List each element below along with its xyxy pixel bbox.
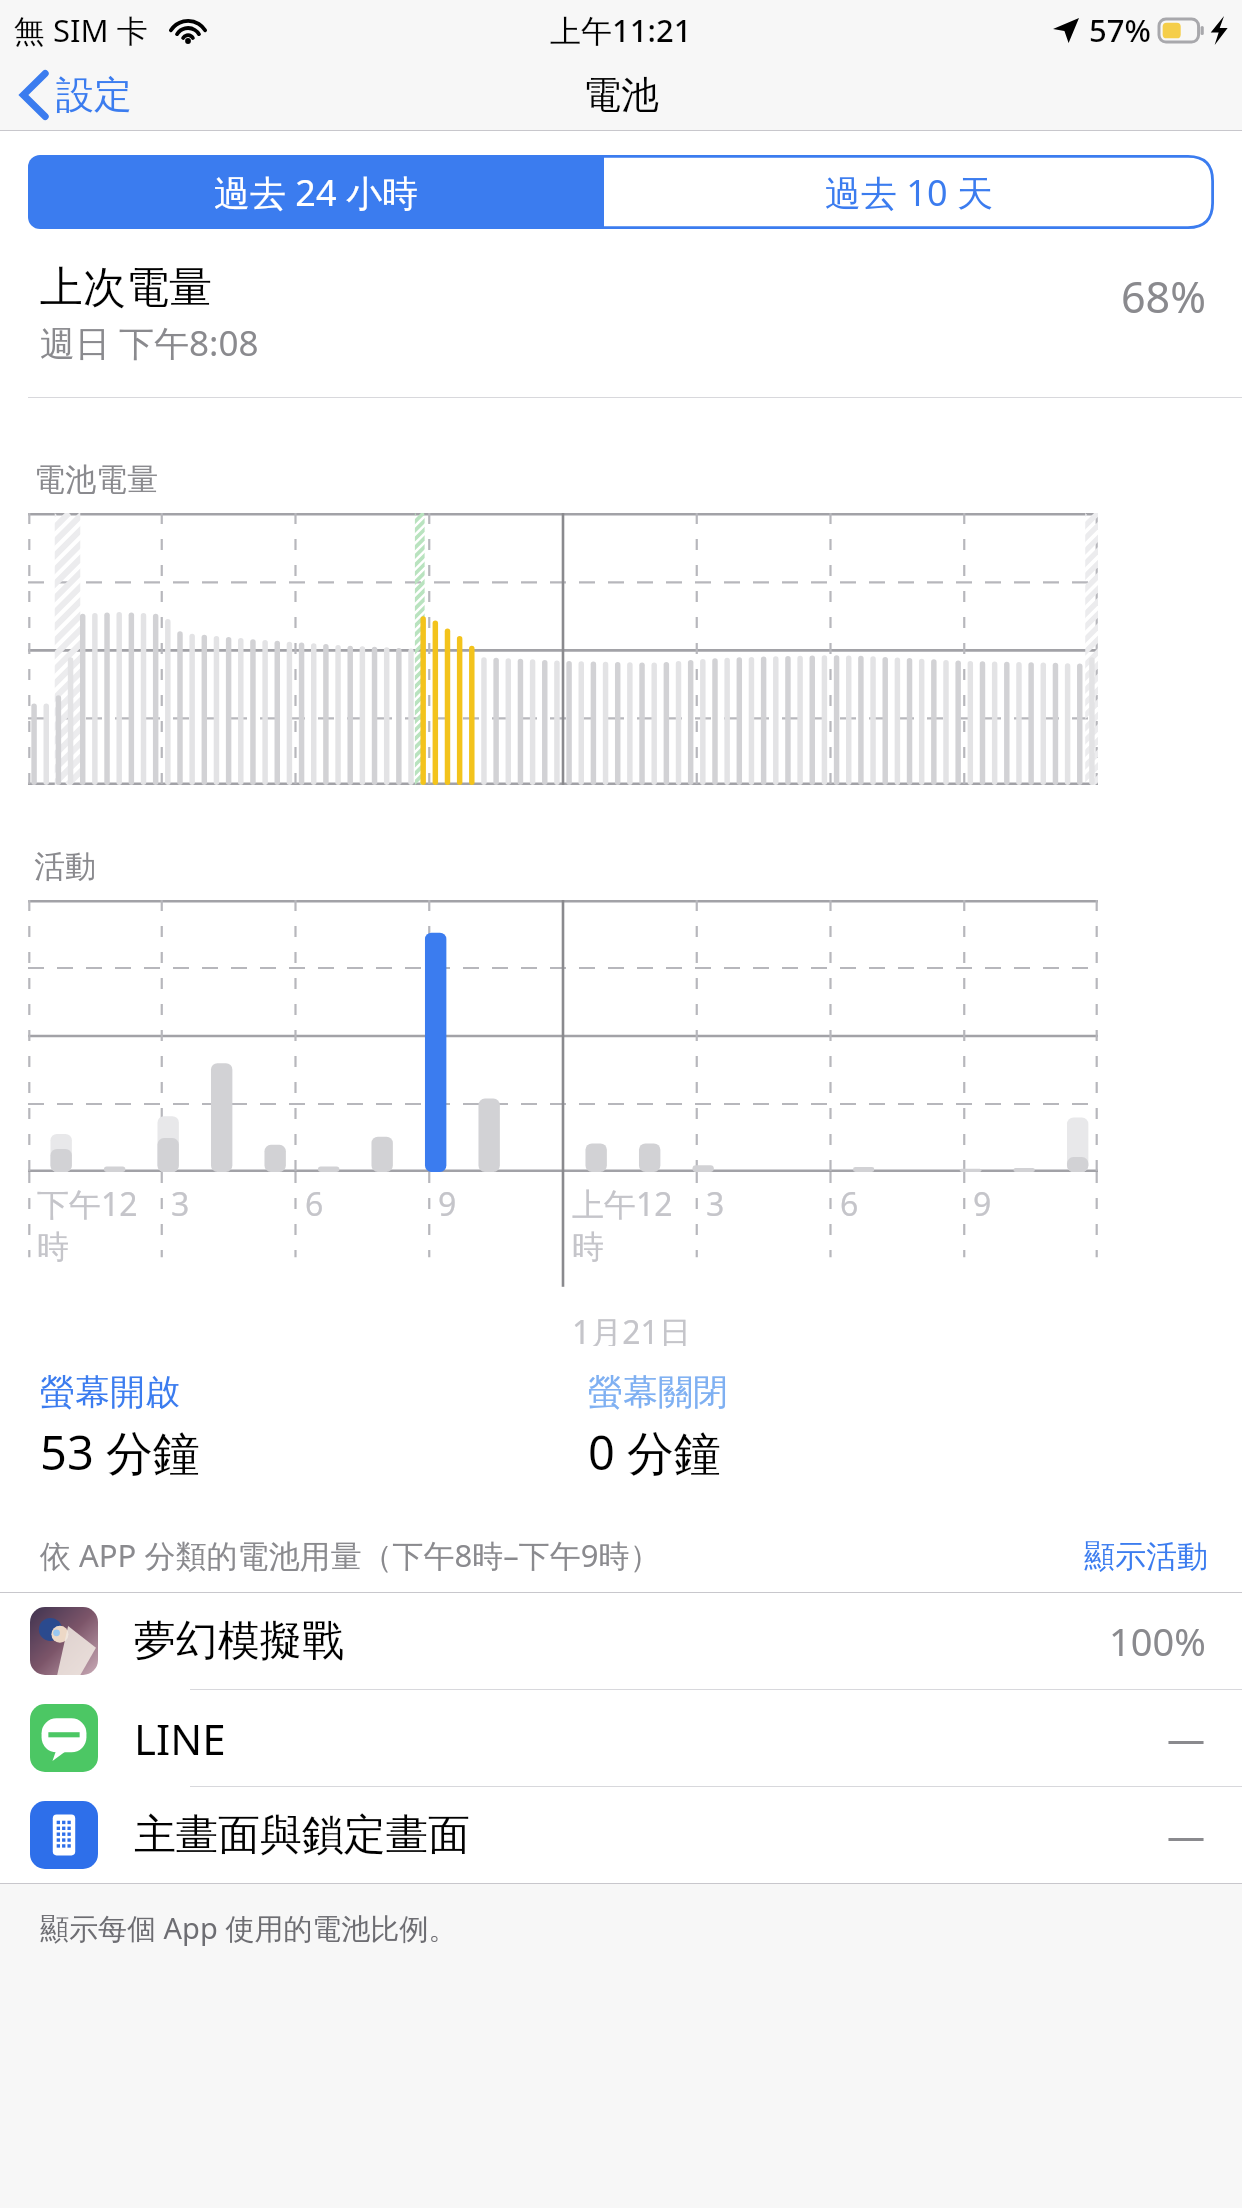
button[interactable]: 夢幻模擬戰 (0, 1593, 1242, 1690)
staticText: 上午12 時 1月21日 (572, 1182, 691, 1346)
staticText: 6 (305, 1182, 324, 1226)
button[interactable]: 主畫面與鎖定畫面 (0, 1787, 1242, 1883)
staticText: 夢幻模擬戰 (134, 1615, 1109, 1668)
staticText: — (1167, 1712, 1206, 1764)
staticText: 活動 (34, 847, 96, 886)
staticText: 6 (840, 1182, 859, 1226)
staticText: 螢幕關閉 (588, 1370, 728, 1414)
staticText: 顯示每個 App 使用的電池比例。 (40, 1908, 458, 1948)
staticText: 過去 10 天 (825, 168, 993, 217)
button[interactable]: 設定 (0, 65, 152, 125)
staticText: 上午11:21 (550, 9, 692, 51)
staticText: 主畫面與鎖定畫面 (134, 1809, 1167, 1862)
staticText: 電池 (583, 71, 659, 119)
staticText: 週日 下午8:08 (40, 319, 259, 367)
staticText: 3 (706, 1182, 725, 1226)
button[interactable]: 過去 24 小時 (28, 155, 604, 229)
staticText: 無 SIM 卡 (14, 9, 148, 51)
staticText: 100% (1109, 1615, 1206, 1667)
staticText: 57% (1089, 9, 1151, 51)
staticText: 9 (438, 1182, 457, 1226)
staticText: 下午12 時 (37, 1182, 138, 1268)
staticText: LINE (134, 1710, 1167, 1767)
button[interactable]: LINE (0, 1690, 1242, 1787)
button[interactable]: 顯示活動 (1084, 1537, 1208, 1576)
staticText: 電池電量 (34, 460, 158, 499)
staticText: 53 分鐘 (40, 1420, 200, 1484)
staticText: 上次電量 (40, 261, 212, 315)
staticText: 3 (171, 1182, 190, 1226)
staticText: 9 (973, 1182, 992, 1226)
staticText: 螢幕開啟 (40, 1370, 180, 1414)
staticText: 設定 (56, 71, 132, 119)
staticText: 依 APP 分類的電池用量（下午8時–下午9時） (40, 1534, 1084, 1576)
staticText: 68% (1121, 267, 1206, 326)
button[interactable]: 過去 10 天 (604, 155, 1214, 229)
staticText: — (1167, 1809, 1206, 1861)
staticText: 過去 24 小時 (214, 168, 418, 217)
staticText: 0 分鐘 (588, 1420, 722, 1484)
